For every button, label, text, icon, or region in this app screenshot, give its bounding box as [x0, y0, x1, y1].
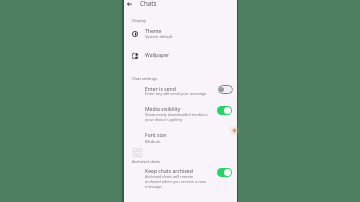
staticText: Archived chats will remain archived when… [145, 174, 206, 189]
button[interactable] [124, 100, 237, 120]
button[interactable] [124, 127, 237, 144]
staticText: Chats [140, 0, 157, 7]
button[interactable]: Off [218, 85, 233, 94]
button[interactable]: On [217, 168, 232, 177]
staticText: System default [145, 34, 205, 39]
staticText: Archived chats [132, 159, 160, 165]
staticText: Show newly downloaded media in your devi… [145, 112, 210, 122]
staticText: Theme [145, 28, 162, 35]
staticText: Display [132, 18, 146, 24]
button[interactable] [124, 83, 237, 98]
staticText: Medium [145, 139, 205, 144]
staticText: Media visibility [145, 106, 181, 113]
staticText: Chat settings [132, 76, 158, 82]
staticText: Wallpaper [145, 52, 170, 59]
button[interactable] [124, 25, 237, 43]
staticText: Enter is send [145, 86, 176, 93]
button[interactable] [124, 45, 237, 59]
button[interactable]: Back [124, 0, 135, 9]
button[interactable]: On [217, 106, 232, 115]
staticText: Keep chats archived [145, 168, 193, 175]
staticText: Enter key will send your message [145, 91, 211, 96]
button[interactable] [124, 164, 237, 189]
staticText: Font size [145, 132, 167, 139]
